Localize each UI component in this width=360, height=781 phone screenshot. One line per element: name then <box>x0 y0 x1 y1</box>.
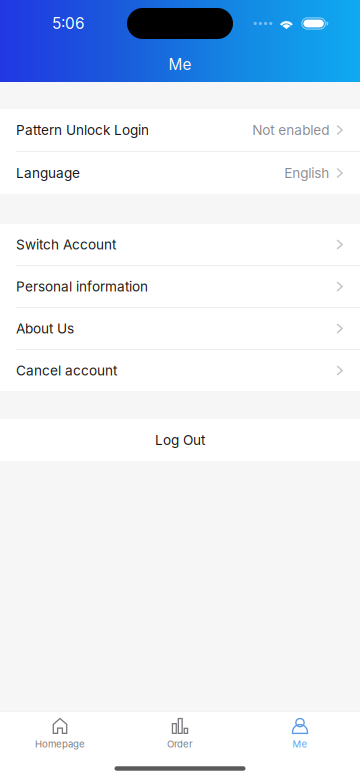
button[interactable]: Homepage <box>0 711 120 756</box>
staticText: About Us <box>16 320 74 337</box>
staticText: Switch Account <box>16 236 116 253</box>
staticText: Me <box>292 738 307 750</box>
button[interactable]: Order <box>120 711 240 756</box>
staticText: Me <box>168 55 191 74</box>
staticText: English <box>284 165 329 181</box>
staticText: Order <box>167 738 193 750</box>
button[interactable]: Cancel account <box>0 350 360 391</box>
staticText: Homepage <box>35 738 85 750</box>
staticText: Personal information <box>16 278 148 295</box>
button[interactable]: Log Out <box>0 419 360 461</box>
staticText: Cancel account <box>16 362 117 379</box>
staticText: Not enabled <box>252 122 329 138</box>
staticText: Language <box>16 165 80 181</box>
button[interactable]: Switch Account <box>0 224 360 265</box>
staticText: 5:06 <box>52 14 85 33</box>
button[interactable]: Language <box>0 152 360 194</box>
staticText: Log Out <box>155 432 205 448</box>
staticText: Pattern Unlock Login <box>16 122 149 138</box>
button[interactable]: Pattern Unlock Login <box>0 109 360 151</box>
button[interactable]: Personal information <box>0 266 360 307</box>
button[interactable]: Me <box>240 711 360 756</box>
button[interactable]: About Us <box>0 308 360 349</box>
